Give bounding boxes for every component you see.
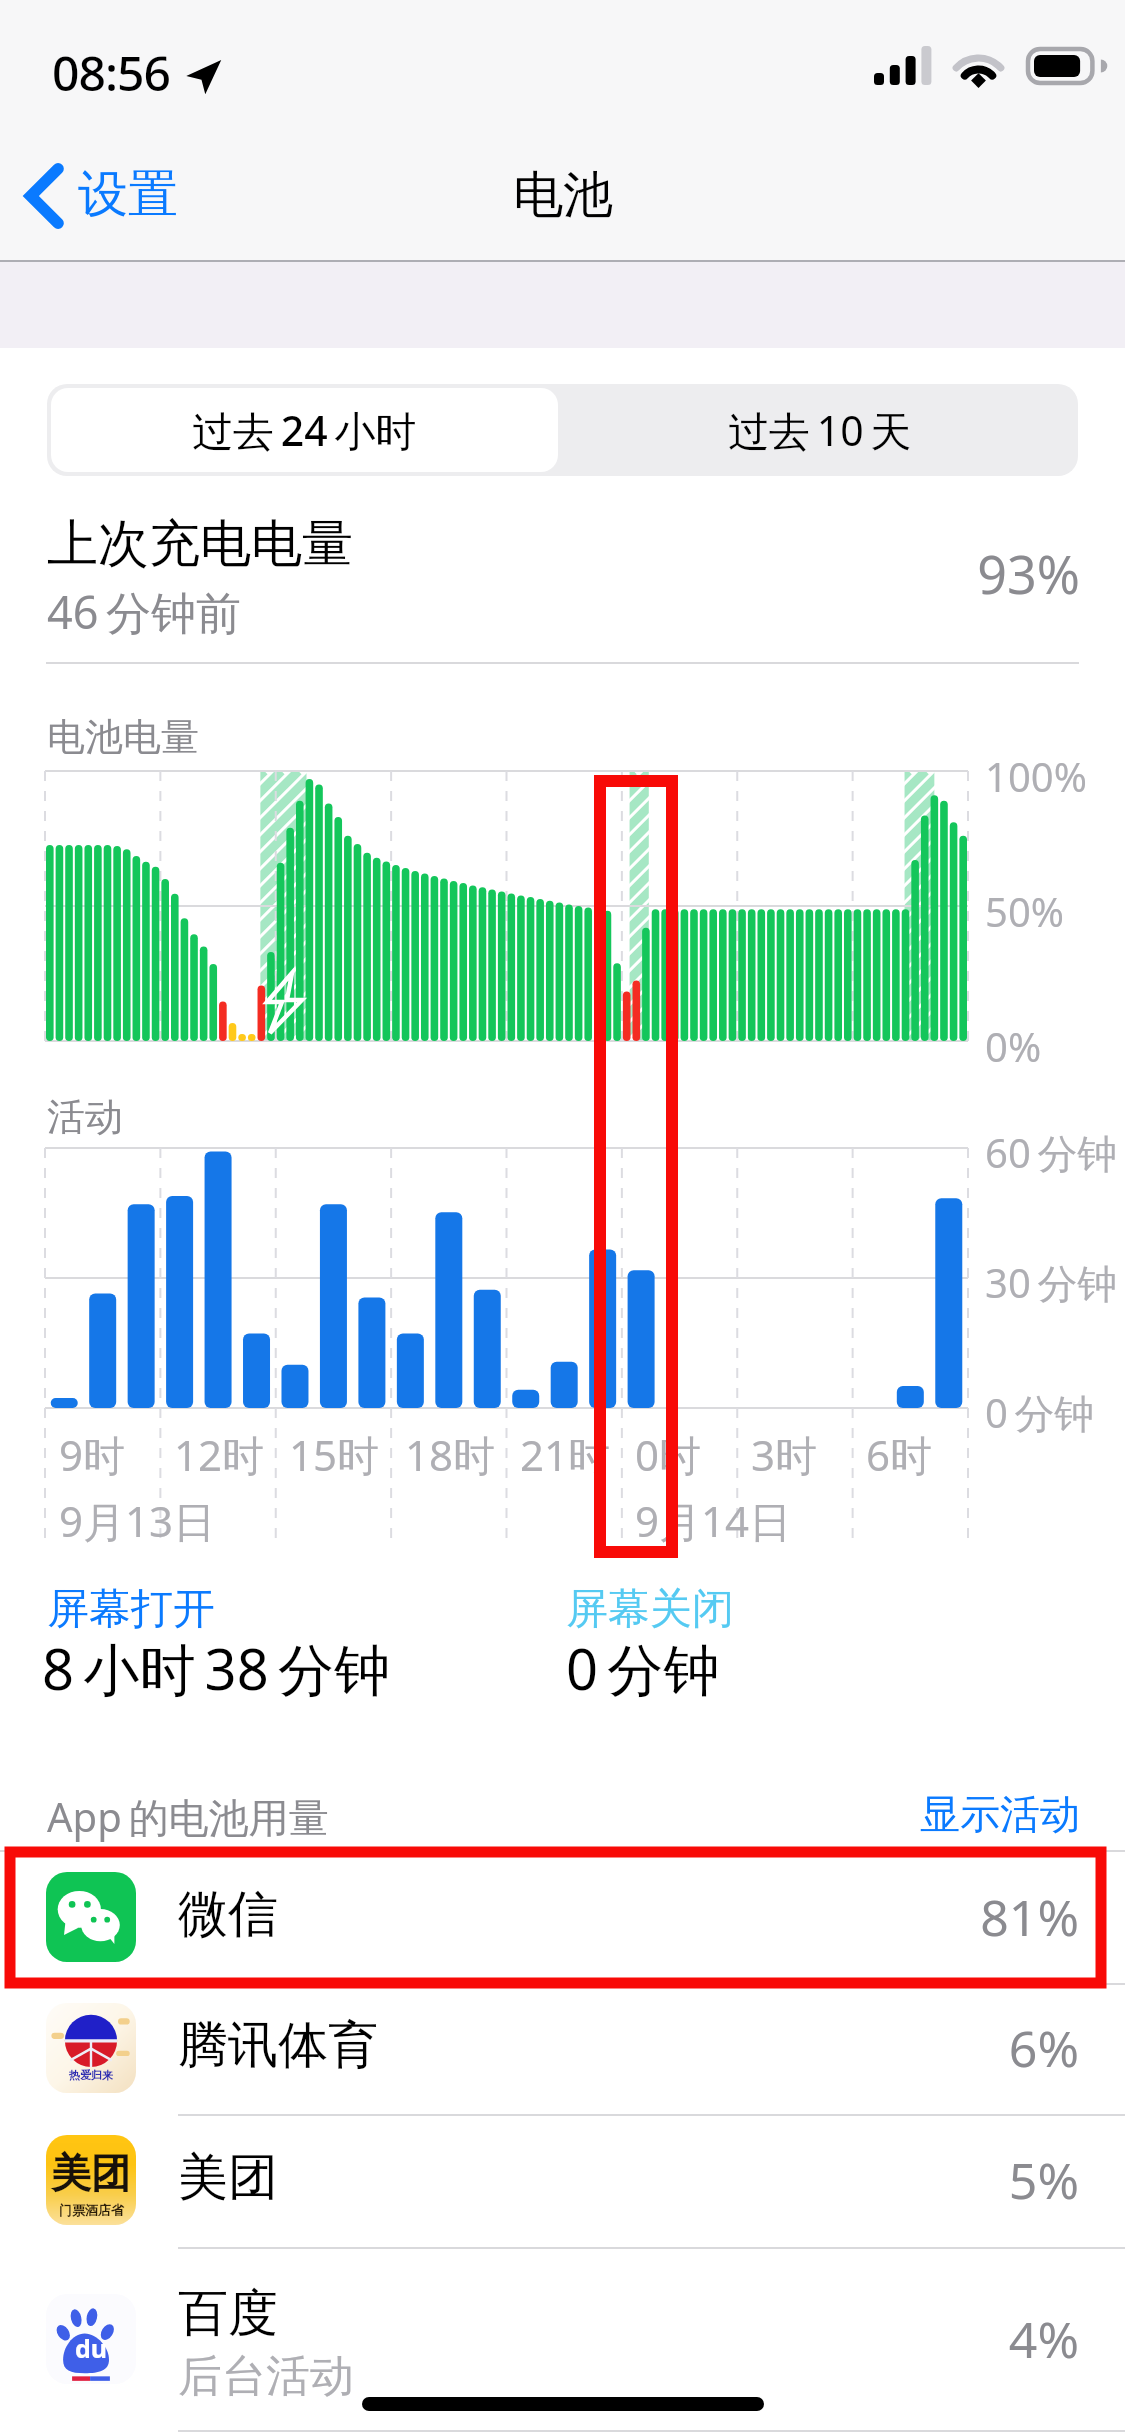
button[interactable]: 美团 <box>0 2114 1125 2247</box>
staticText: 30 分钟 <box>985 1255 1118 1310</box>
staticText: 3时 <box>751 1426 818 1483</box>
staticText: 46 分钟前 <box>47 581 241 642</box>
staticText: 60 分钟 <box>985 1125 1118 1180</box>
staticText: 5% <box>780 2146 1079 2214</box>
staticText: 屏幕打开 <box>47 1583 215 1636</box>
staticText: 活动 <box>47 1093 123 1141</box>
button[interactable]: 过去 24 小时 <box>51 388 558 472</box>
staticText: 18时 <box>405 1426 496 1483</box>
staticText: du <box>75 2331 108 2365</box>
staticText: 6% <box>780 2014 1079 2082</box>
staticText: 美团 <box>51 2148 131 2198</box>
staticText: 93% <box>880 538 1080 609</box>
staticText: App 的电池用量 <box>47 1789 329 1844</box>
staticText: 9时 <box>59 1426 126 1483</box>
staticText: 热爱归来 <box>69 2068 113 2082</box>
staticText: 100% <box>985 749 1087 803</box>
staticText: 6时 <box>866 1426 933 1483</box>
staticText: 0 分钟 <box>985 1385 1095 1440</box>
staticText: 美团 <box>178 2146 278 2209</box>
staticText: 0时 <box>635 1426 702 1483</box>
staticText: 0% <box>985 1019 1042 1073</box>
staticText: 屏幕关闭 <box>566 1583 734 1636</box>
staticText: 微信 <box>178 1883 278 1946</box>
staticText: 8 小时 38 分钟 <box>42 1630 390 1706</box>
staticText: 设置 <box>78 163 178 226</box>
staticText: 腾讯体育 <box>178 2014 378 2077</box>
staticText: 12时 <box>174 1426 265 1483</box>
button[interactable]: 微信 <box>0 1852 1125 1983</box>
staticText: 9月14日 <box>635 1492 792 1549</box>
button[interactable]: du <box>0 2247 1125 2431</box>
staticText: 0 分钟 <box>566 1630 720 1706</box>
staticText: 15时 <box>289 1426 380 1483</box>
button[interactable]: 显示活动 <box>780 1789 1080 1839</box>
staticText: 4% <box>780 2305 1079 2373</box>
staticText: 上次充电电量 <box>47 512 353 576</box>
staticText: 9月13日 <box>59 1492 216 1549</box>
button[interactable]: 返回 设置 <box>22 160 178 228</box>
staticText: 81% <box>780 1883 1079 1951</box>
staticText: 过去 10 天 <box>728 402 912 458</box>
staticText: 50% <box>985 884 1064 938</box>
staticText: 电池电量 <box>47 713 199 761</box>
button[interactable]: 热爱归来 <box>0 1983 1125 2114</box>
staticText: 08:56 <box>52 40 170 105</box>
staticText: 21时 <box>520 1426 611 1483</box>
staticText: 百度 <box>178 2282 278 2345</box>
staticText: 后台活动 <box>178 2349 354 2404</box>
staticText: 显示活动 <box>780 1789 1080 1839</box>
button[interactable]: 过去 10 天 <box>562 384 1078 476</box>
staticText: 过去 24 小时 <box>192 402 417 458</box>
staticText: 电池 <box>513 164 613 227</box>
staticText: 门票酒店省 <box>59 2202 124 2218</box>
